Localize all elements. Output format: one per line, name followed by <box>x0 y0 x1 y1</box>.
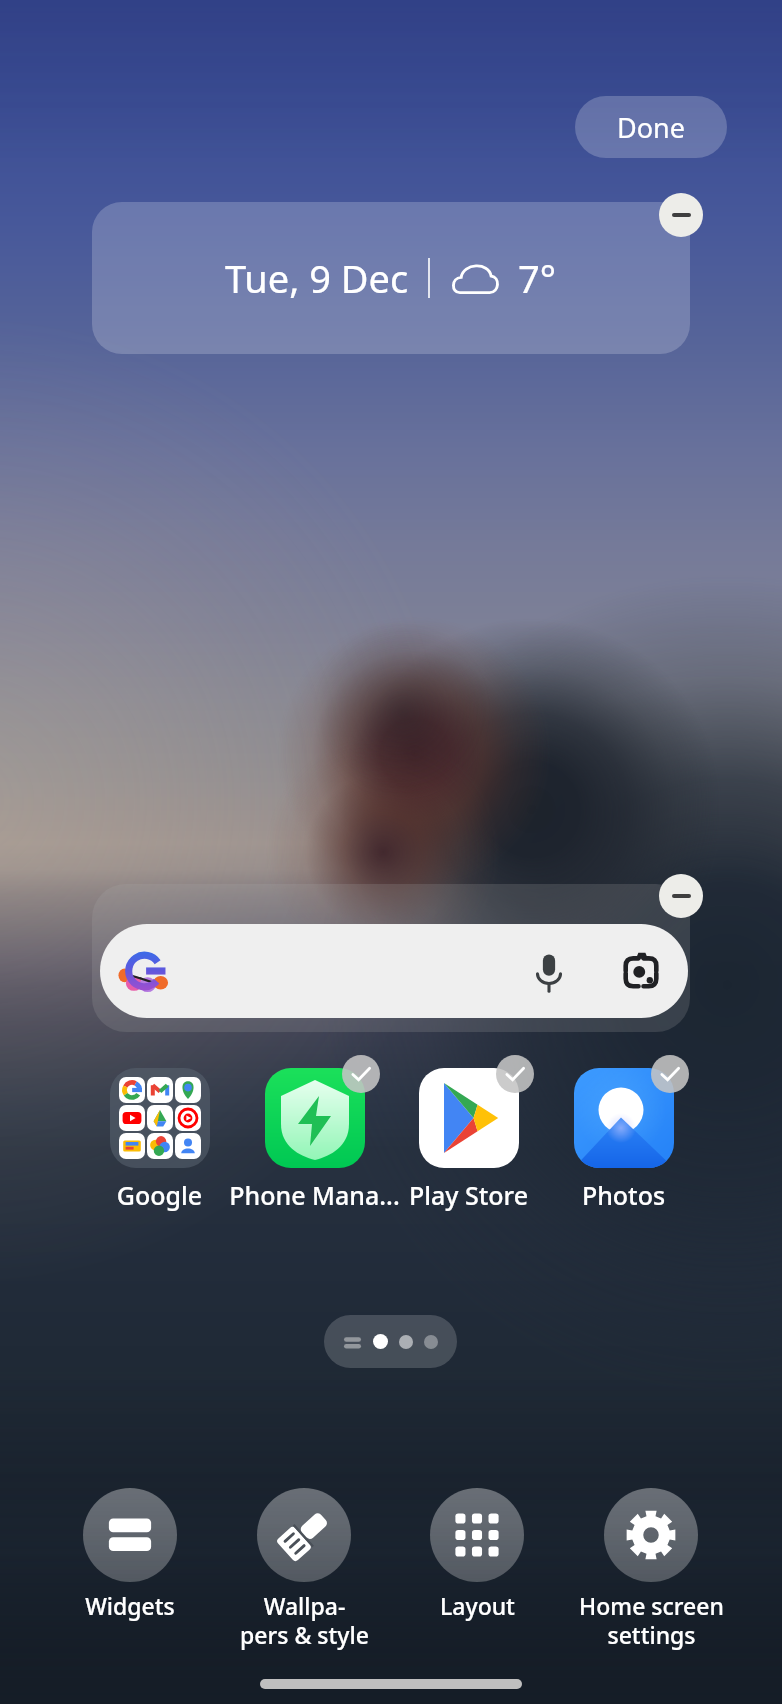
button[interactable] <box>324 1315 457 1368</box>
staticText: Done <box>617 109 685 146</box>
button[interactable]: Tue, 9 Dec <box>92 202 690 354</box>
button[interactable]: Selected <box>651 1055 689 1093</box>
button[interactable]: Selected <box>222 1068 407 1210</box>
button[interactable]: Widgets <box>40 1488 220 1621</box>
staticText: Google <box>67 1178 252 1212</box>
button[interactable]: Remove <box>659 874 703 918</box>
button[interactable]: Google Lens <box>619 949 663 993</box>
staticText: 7° <box>518 252 557 304</box>
button[interactable]: Google <box>67 1068 252 1210</box>
button[interactable]: Selected <box>496 1055 534 1093</box>
button[interactable]: Wallpa- pers & style <box>214 1488 394 1651</box>
staticText: Layout <box>440 1590 515 1621</box>
staticText: Wallpa- pers & style <box>240 1590 369 1651</box>
staticText: Photos <box>531 1178 716 1212</box>
button[interactable]: Selected <box>531 1068 716 1210</box>
staticText: Phone Mana... <box>222 1178 407 1212</box>
button[interactable]: Home screen settings <box>561 1488 741 1651</box>
button[interactable]: Voice search <box>531 949 567 995</box>
staticText: Play Store <box>376 1178 561 1212</box>
button[interactable]: Done <box>575 96 727 158</box>
button[interactable]: Remove <box>659 193 703 237</box>
button[interactable]: Voice search <box>100 924 688 1018</box>
staticText: Widgets <box>85 1590 175 1621</box>
button[interactable]: Selected <box>342 1055 380 1093</box>
staticText: Home screen settings <box>579 1590 724 1651</box>
button[interactable]: Layout <box>387 1488 567 1621</box>
staticText: Tue, 9 Dec <box>225 252 409 304</box>
button[interactable]: Selected <box>376 1068 561 1210</box>
